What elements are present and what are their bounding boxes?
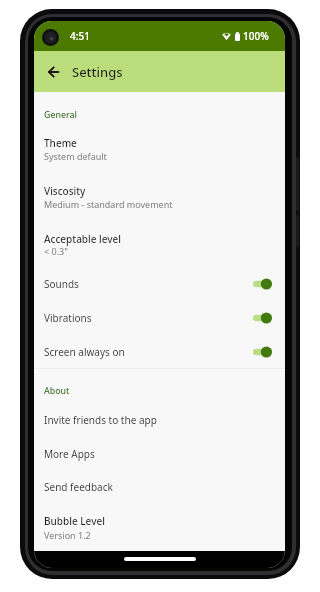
button[interactable]: Sounds bbox=[34, 267, 285, 301]
staticText: Theme bbox=[44, 136, 77, 150]
button[interactable]: Invite friends to the app bbox=[34, 404, 285, 437]
button[interactable]: Viscosity bbox=[34, 173, 285, 219]
staticText: System default bbox=[44, 150, 107, 162]
staticText: 100% bbox=[243, 29, 269, 43]
staticText: Screen always on bbox=[44, 345, 125, 359]
button[interactable]: Acceptable level bbox=[34, 221, 285, 266]
staticText: Vibrations bbox=[44, 311, 92, 325]
staticText: 4:51 bbox=[70, 29, 90, 43]
staticText: Sounds bbox=[44, 277, 79, 291]
staticText: Settings bbox=[72, 63, 123, 81]
button[interactable]: Bubble Level bbox=[34, 504, 285, 549]
staticText: Viscosity bbox=[44, 184, 86, 198]
button[interactable]: Screen always on bbox=[34, 335, 285, 368]
button[interactable]: Send feedback bbox=[34, 470, 285, 504]
staticText: Acceptable level bbox=[44, 232, 122, 246]
staticText: Send feedback bbox=[44, 480, 113, 494]
staticText: About bbox=[44, 385, 70, 397]
button[interactable]: Theme bbox=[34, 126, 285, 171]
staticText: Bubble Level bbox=[44, 514, 105, 528]
staticText: More Apps bbox=[44, 447, 95, 461]
staticText: Medium - standard movement bbox=[44, 198, 173, 210]
staticText: Version 1.2 bbox=[44, 529, 91, 541]
button[interactable]: Vibrations bbox=[34, 301, 285, 335]
staticText: Invite friends to the app bbox=[44, 413, 157, 427]
button[interactable]: More Apps bbox=[34, 437, 285, 470]
staticText: General bbox=[44, 109, 77, 121]
staticText: < 0.3" bbox=[44, 245, 68, 257]
button[interactable]: Back bbox=[38, 57, 68, 87]
